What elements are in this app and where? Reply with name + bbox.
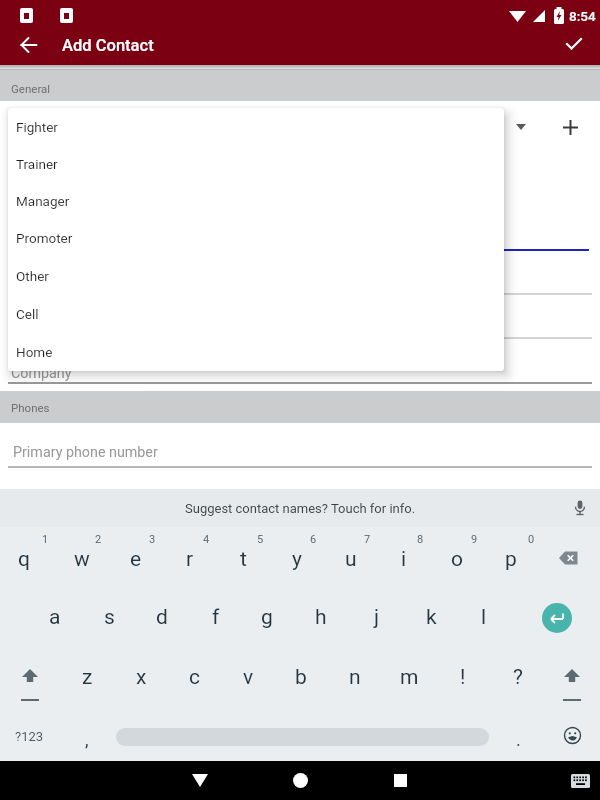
button[interactable]: g	[244, 593, 290, 641]
button[interactable]: w	[59, 535, 105, 583]
staticText: q	[18, 547, 30, 572]
staticText: Phones	[11, 401, 50, 414]
button[interactable]: s	[86, 593, 132, 641]
staticText: Add Contact	[62, 36, 154, 55]
button[interactable]: h	[298, 593, 344, 641]
button[interactable]: Other	[8, 257, 504, 295]
button[interactable]: u	[328, 535, 374, 583]
staticText: 0	[528, 533, 535, 546]
staticText: Manager	[16, 193, 70, 209]
staticText: 3	[149, 533, 156, 546]
button[interactable]: x	[118, 653, 164, 701]
button[interactable]: Home	[8, 333, 504, 371]
staticText: 4	[203, 533, 210, 546]
staticText: 1	[42, 533, 49, 546]
staticText: Primary phone number	[13, 444, 158, 461]
staticText: e	[130, 547, 142, 572]
staticText: Suggest contact names? Touch for info.	[185, 501, 416, 516]
button[interactable]: n	[332, 653, 378, 701]
staticText: x	[136, 665, 147, 690]
staticText: a	[49, 605, 61, 630]
button[interactable]	[180, 761, 220, 800]
button[interactable]	[13, 29, 45, 61]
staticText: 5	[257, 533, 264, 546]
button[interactable]	[4, 712, 54, 760]
button[interactable]	[554, 111, 586, 143]
staticText: y	[292, 547, 302, 572]
button[interactable]: e	[113, 535, 159, 583]
staticText: w	[74, 547, 90, 572]
staticText: z	[82, 665, 93, 690]
button[interactable]: j	[354, 593, 400, 641]
button[interactable]: b	[278, 653, 324, 701]
button[interactable]: y	[274, 535, 320, 583]
button[interactable]: i	[381, 535, 427, 583]
staticText: Other	[16, 268, 49, 284]
button[interactable]: Promoter	[8, 219, 504, 257]
staticText: Company	[11, 365, 72, 382]
button[interactable]	[280, 761, 320, 800]
button[interactable]	[558, 27, 590, 59]
button[interactable]	[505, 111, 537, 143]
button[interactable]	[566, 494, 594, 522]
staticText: 8	[417, 533, 424, 546]
button[interactable]: k	[408, 593, 454, 641]
button[interactable]: ?	[495, 653, 541, 701]
staticText: Promoter	[16, 230, 73, 246]
staticText: j	[374, 605, 380, 630]
staticText: c	[189, 665, 200, 690]
staticText: .	[516, 729, 521, 750]
button[interactable]: m	[386, 653, 432, 701]
button[interactable]	[7, 654, 53, 702]
staticText: i	[401, 547, 407, 572]
staticText: General	[11, 82, 51, 95]
staticText: Home	[16, 344, 53, 360]
staticText: v	[243, 665, 254, 690]
staticText: g	[261, 605, 273, 630]
staticText: o	[451, 547, 463, 572]
staticText: d	[156, 605, 168, 630]
staticText: k	[426, 605, 437, 630]
button[interactable]: f	[193, 593, 239, 641]
button[interactable]: t	[220, 535, 266, 583]
button[interactable]	[0, 489, 600, 527]
staticText: Fighter	[16, 119, 58, 135]
staticText: !	[460, 665, 466, 690]
button[interactable]: Fighter	[8, 108, 504, 145]
staticText: p	[505, 547, 517, 572]
staticText: h	[315, 605, 327, 630]
button[interactable]: !	[440, 653, 486, 701]
button[interactable]: Manager	[8, 182, 504, 219]
staticText: 6	[310, 533, 317, 546]
button[interactable]: c	[171, 653, 217, 701]
staticText: l	[481, 605, 487, 630]
button[interactable]: v	[225, 653, 271, 701]
button[interactable]: .	[495, 715, 541, 763]
button[interactable]: a	[32, 593, 78, 641]
button[interactable]	[549, 654, 595, 702]
button[interactable]: z	[64, 653, 110, 701]
button[interactable]: Cell	[8, 295, 504, 333]
button[interactable]: o	[434, 535, 480, 583]
button[interactable]: q	[1, 535, 47, 583]
button[interactable]: p	[488, 535, 534, 583]
button[interactable]: d	[139, 593, 185, 641]
button[interactable]	[380, 761, 420, 800]
staticText: 9	[471, 533, 478, 546]
staticText: 2	[95, 533, 102, 546]
button[interactable]	[558, 721, 586, 749]
staticText: t	[240, 547, 247, 572]
button[interactable]	[542, 603, 572, 633]
staticText: r	[186, 547, 194, 572]
staticText: f	[212, 605, 220, 630]
button[interactable]: l	[461, 593, 507, 641]
button[interactable]: r	[167, 535, 213, 583]
button[interactable]	[546, 535, 592, 581]
staticText: ,	[85, 729, 89, 750]
staticText: m	[400, 665, 419, 690]
button[interactable]: Trainer	[8, 145, 504, 182]
staticText: s	[104, 605, 115, 630]
button[interactable]: ,	[64, 715, 110, 763]
button[interactable]	[562, 764, 598, 797]
